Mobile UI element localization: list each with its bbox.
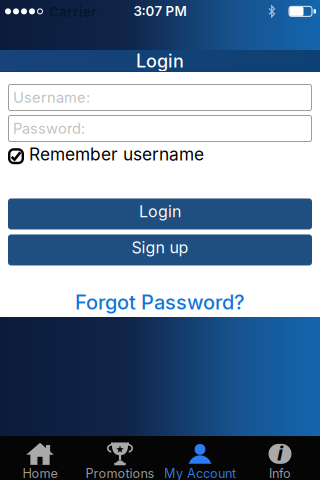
staticText: Carrier (49, 4, 96, 20)
button[interactable]: Login (8, 198, 312, 229)
staticText: Forgot Password? (75, 290, 245, 314)
staticText: Login (139, 202, 181, 221)
button[interactable]: i (240, 436, 320, 480)
staticText: Info (269, 466, 291, 480)
button[interactable]: Home (0, 436, 80, 480)
staticText: My Account (164, 466, 236, 480)
button[interactable]: Remember username (0, 144, 320, 168)
button[interactable]: Forgot Password? (75, 290, 245, 314)
staticText: Promotions (85, 466, 154, 480)
staticText: Password: (13, 120, 85, 137)
staticText: Home (22, 466, 57, 480)
staticText: Sign up (131, 238, 188, 257)
button[interactable]: Promotions (80, 436, 160, 480)
button[interactable]: Sign up (8, 234, 312, 265)
staticText: i (277, 439, 283, 466)
button[interactable]: My Account (160, 436, 240, 480)
button[interactable]: Password: (8, 115, 312, 142)
button[interactable]: Username: (8, 84, 312, 111)
staticText: Remember username (29, 144, 204, 164)
staticText: 3:07 PM (133, 3, 186, 19)
staticText: Login (136, 50, 184, 72)
staticText: Username: (13, 89, 90, 106)
